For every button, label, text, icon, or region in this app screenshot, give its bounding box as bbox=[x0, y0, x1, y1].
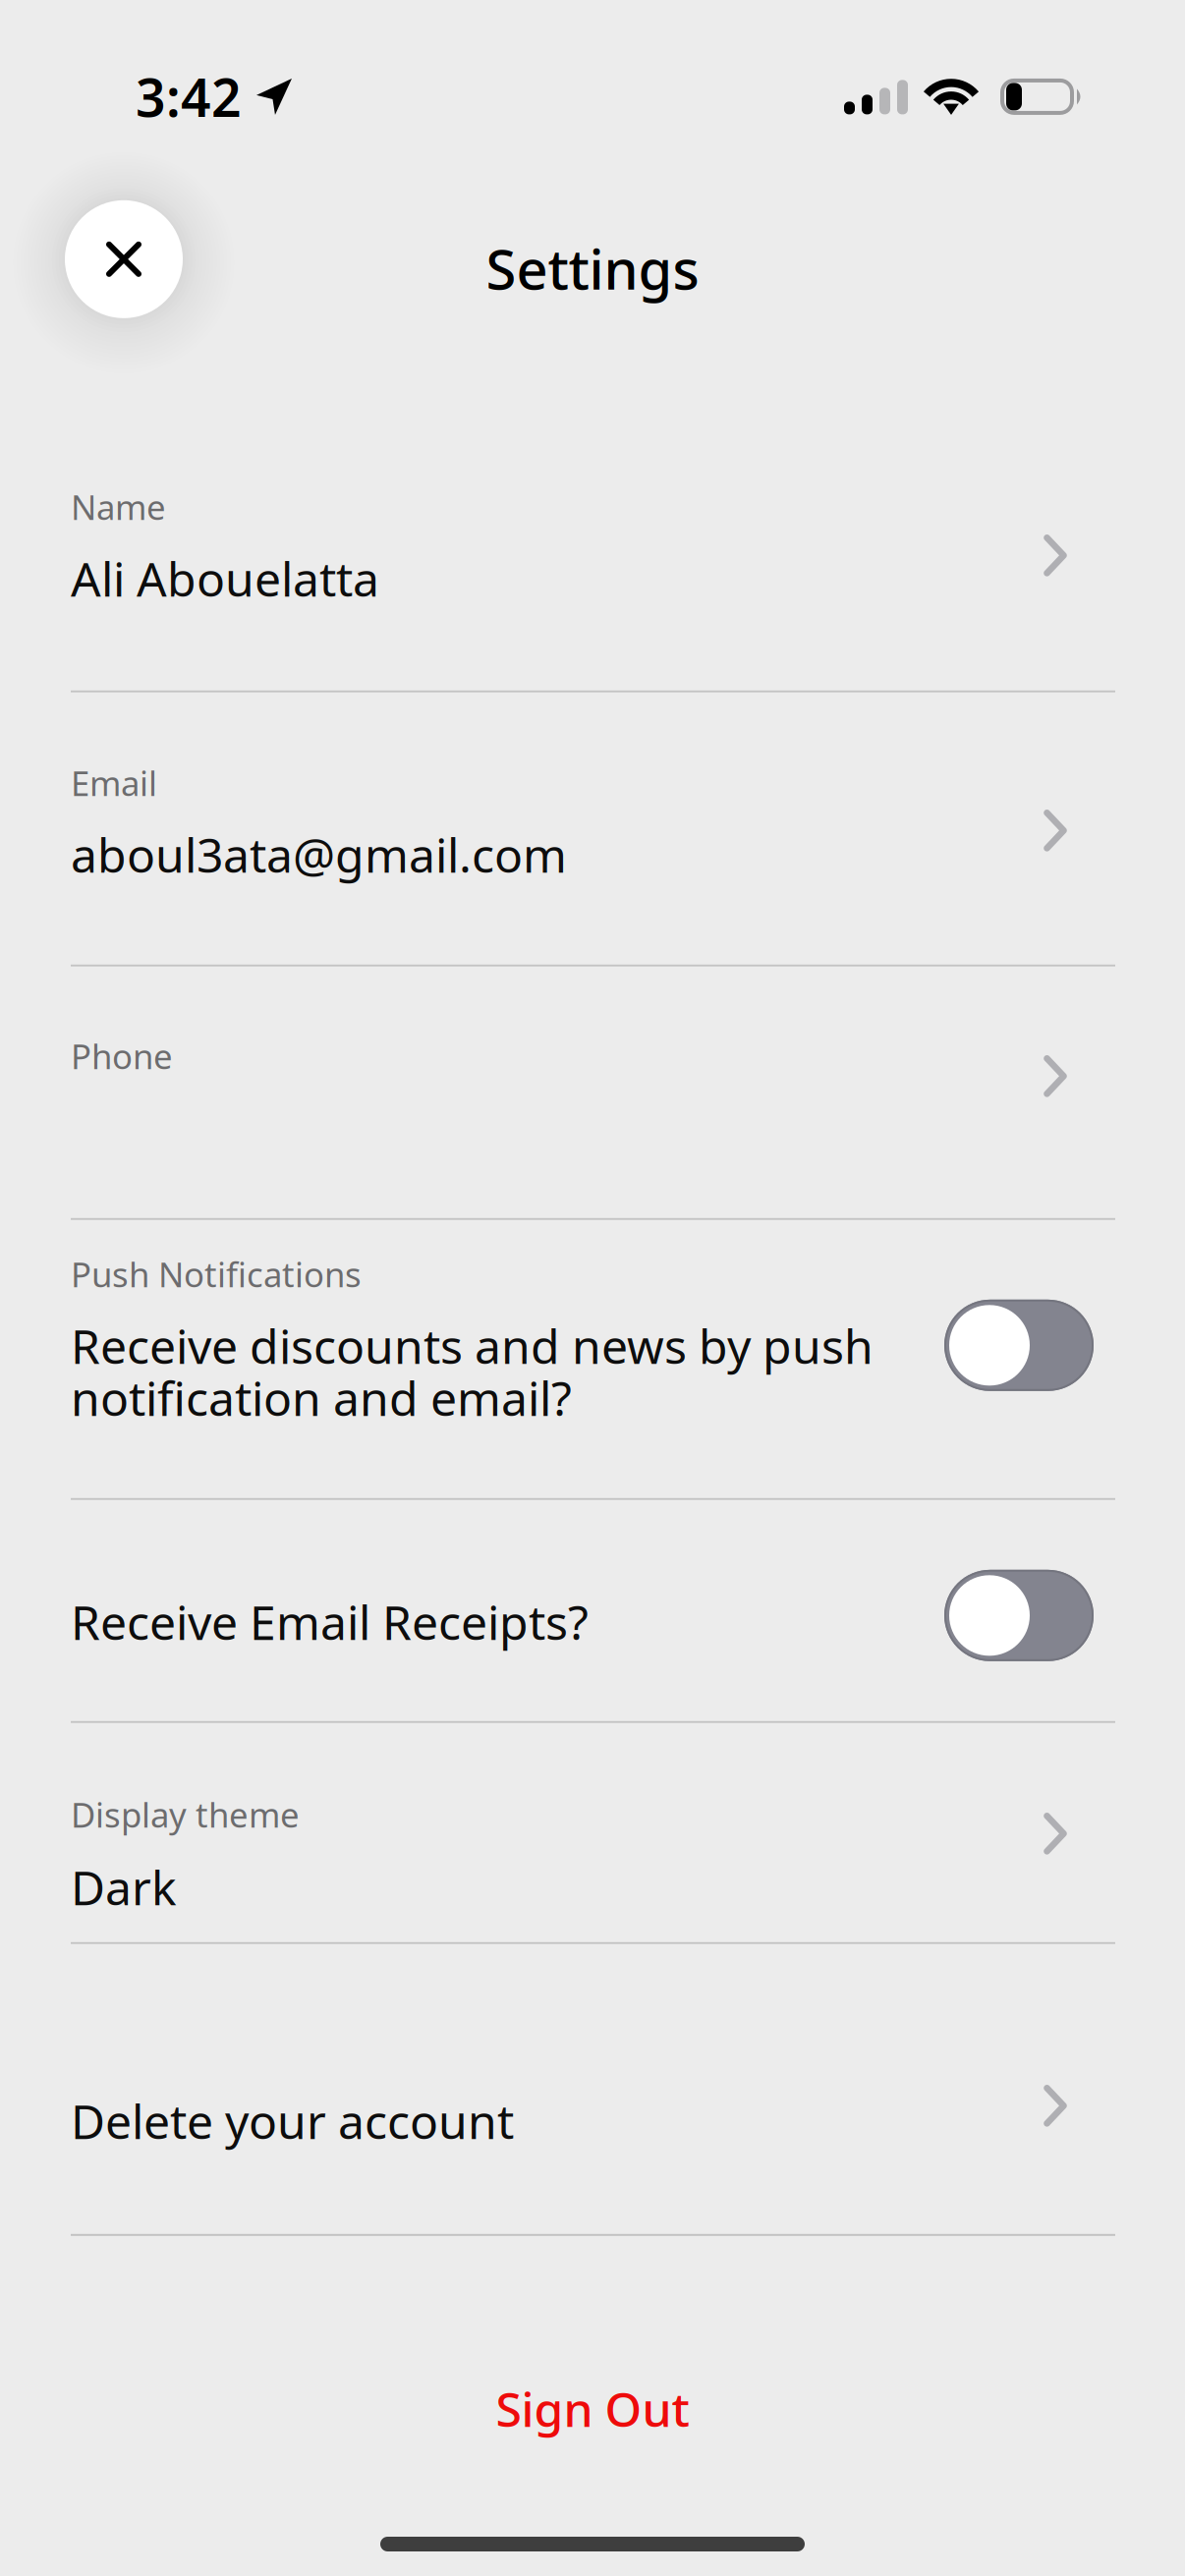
button[interactable]: Delete your account bbox=[0, 1944, 1185, 2234]
staticText: aboul3ata@gmail.com bbox=[71, 823, 567, 886]
button[interactable]: Phone bbox=[0, 967, 1185, 1218]
staticText: Sign Out bbox=[496, 2377, 689, 2440]
button[interactable]: Receive Email Receipts? bbox=[0, 1500, 1185, 1721]
staticText: Receive discounts and news by push bbox=[71, 1314, 874, 1377]
staticText: 3:42 bbox=[136, 62, 242, 131]
staticText: Dark bbox=[71, 1856, 177, 1918]
staticText: notification and email? bbox=[71, 1366, 572, 1429]
staticText: Delete your account bbox=[71, 2089, 514, 2152]
staticText: Ali Abouelatta bbox=[71, 547, 379, 610]
button[interactable]: Display theme bbox=[0, 1723, 1185, 1942]
button[interactable]: Email bbox=[0, 692, 1185, 965]
button[interactable]: Sign Out bbox=[0, 2377, 1185, 2440]
staticText: Push Notifications bbox=[71, 1251, 362, 1297]
staticText: Email bbox=[71, 760, 157, 805]
staticText: Phone bbox=[71, 1033, 173, 1079]
staticText: Display theme bbox=[71, 1792, 300, 1837]
button[interactable]: Name bbox=[0, 416, 1185, 690]
staticText: Name bbox=[71, 484, 166, 529]
button[interactable]: Close bbox=[65, 200, 183, 318]
button[interactable]: Push Notifications bbox=[0, 1220, 1185, 1498]
staticText: Settings bbox=[486, 232, 699, 305]
staticText: Receive Email Receipts? bbox=[71, 1590, 589, 1653]
